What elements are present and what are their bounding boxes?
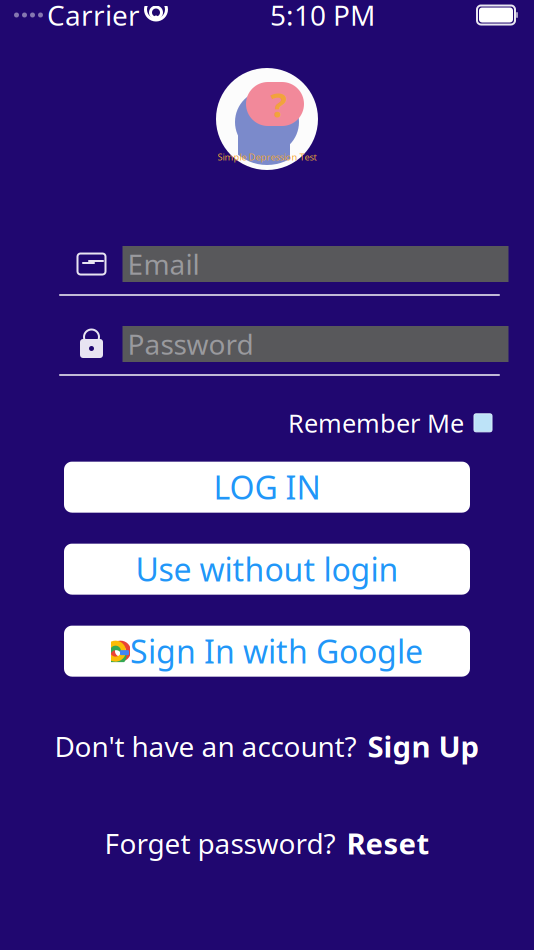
staticText: Password — [127, 325, 253, 363]
staticText: ? — [270, 81, 287, 127]
staticText: Email — [127, 245, 199, 283]
button[interactable]: Sign Up — [367, 727, 479, 766]
staticText: Don't have an account? — [54, 727, 356, 765]
staticText: Use without login — [135, 548, 398, 590]
staticText: Forget password? — [104, 824, 335, 862]
staticText: Simple Depression Test — [217, 151, 316, 163]
button[interactable]: LOG IN — [64, 462, 470, 513]
button[interactable]: Reset — [346, 824, 429, 863]
staticText: Reset — [346, 824, 429, 863]
staticText: Carrier — [47, 0, 140, 34]
staticText: LOG IN — [213, 466, 320, 508]
button[interactable]: Remember Me — [288, 406, 492, 440]
staticText: Remember Me — [288, 406, 464, 440]
staticText: 5:10 PM — [270, 0, 375, 34]
button[interactable]: Sign In with Google — [64, 626, 470, 677]
staticText: Sign In with Google — [130, 630, 423, 672]
button[interactable]: Use without login — [64, 544, 470, 595]
staticText: Sign Up — [367, 727, 479, 766]
